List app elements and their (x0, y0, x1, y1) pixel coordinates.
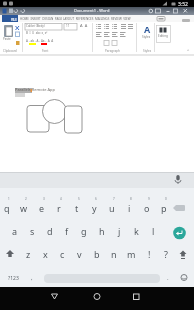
staticText: Paragraph (105, 49, 120, 53)
staticText: Paste (3, 37, 11, 41)
staticText: ! (148, 248, 151, 260)
button[interactable]: h (94, 224, 110, 238)
staticText: Calibri (Body) (26, 24, 45, 28)
staticText: 11 (66, 24, 70, 28)
staticText: k (134, 225, 139, 237)
staticText: z (26, 248, 31, 260)
button[interactable]: v (71, 247, 87, 261)
button[interactable]: a (7, 224, 23, 238)
button[interactable]: t (69, 201, 85, 215)
staticText: Document1 - Word (74, 8, 110, 13)
staticText: ? (164, 248, 168, 260)
button[interactable]: i (121, 201, 137, 215)
staticText: n (111, 248, 117, 260)
button[interactable]: x (37, 247, 53, 261)
staticText: g (81, 225, 87, 237)
staticText: 7 (113, 197, 115, 201)
staticText: a (12, 225, 18, 237)
staticText: y (92, 202, 97, 214)
staticText: Parallels Remote App (15, 87, 55, 92)
staticText: HOME INSERT DESIGN PAGE LAYOUT REFERENCE… (20, 17, 131, 21)
button[interactable]: z (20, 247, 36, 261)
button[interactable]: u (104, 201, 120, 215)
button[interactable]: j (111, 224, 127, 238)
button[interactable]: ?123 (5, 271, 21, 285)
button[interactable]: s (24, 224, 40, 238)
staticText: Editing (158, 34, 168, 38)
staticText: t (75, 202, 79, 214)
button[interactable]: o (139, 201, 155, 215)
staticText: A (144, 23, 151, 35)
staticText: x (43, 248, 48, 260)
staticText: ?123 (8, 275, 19, 282)
staticText: m (127, 248, 136, 260)
staticText: 2 (25, 197, 27, 201)
button[interactable]: ! (141, 247, 157, 261)
staticText: r (57, 202, 61, 214)
staticText: i (128, 202, 131, 214)
staticText: . (167, 274, 169, 282)
button[interactable]: g (76, 224, 92, 238)
staticText: 9 (148, 197, 150, 201)
staticText: b (94, 248, 100, 260)
staticText: A - ab - A - Aa - A A (26, 39, 54, 43)
button[interactable]: f (59, 224, 75, 238)
button[interactable]: . (160, 271, 176, 285)
button[interactable] (129, 287, 194, 310)
staticText: p (161, 202, 167, 214)
staticText: 1 (8, 197, 10, 201)
staticText: s (30, 225, 35, 237)
staticText: , (31, 274, 33, 282)
staticText: 4 (60, 197, 62, 201)
staticText: j (118, 225, 121, 237)
button[interactable]: d (42, 224, 58, 238)
staticText: FILE (11, 18, 17, 22)
staticText: d (47, 225, 53, 237)
button[interactable]: c (54, 247, 70, 261)
staticText: h (99, 225, 105, 237)
staticText: q (4, 202, 10, 214)
button[interactable]: l (145, 224, 161, 238)
button[interactable]: e (34, 201, 50, 215)
button[interactable]: p (156, 201, 172, 215)
button[interactable]: m (123, 247, 139, 261)
staticText: 8 (130, 197, 132, 201)
button[interactable]: b (89, 247, 105, 261)
staticText: l (152, 225, 155, 237)
staticText: 3 (43, 197, 45, 201)
button[interactable]: , (24, 271, 40, 285)
button[interactable]: ? (158, 247, 174, 261)
staticText: 3:52 (178, 1, 188, 8)
button[interactable]: y (86, 201, 102, 215)
staticText: 0 (165, 197, 167, 201)
staticText: f (65, 225, 69, 237)
button[interactable] (0, 287, 64, 310)
staticText: 6 (95, 197, 97, 201)
staticText: w (20, 202, 28, 214)
button[interactable]: k (128, 224, 144, 238)
staticText: Styles (142, 35, 151, 39)
staticText: o (144, 202, 150, 214)
staticText: Font (42, 49, 49, 53)
button[interactable] (64, 287, 129, 310)
button[interactable]: n (106, 247, 122, 261)
staticText: Styles (143, 49, 152, 53)
button[interactable]: FILE (2, 15, 18, 22)
staticText: B I U abc x, x² (26, 31, 48, 35)
button[interactable]: r (51, 201, 67, 215)
staticText: e (39, 202, 45, 214)
staticText: c (60, 248, 65, 260)
staticText: u (109, 202, 115, 214)
staticText: Clipboard (3, 49, 17, 53)
staticText: ^ (187, 48, 190, 53)
staticText: 5 (78, 197, 80, 201)
staticText: v (77, 248, 82, 260)
staticText: A A (80, 23, 88, 28)
button[interactable]: w (16, 201, 32, 215)
button[interactable]: q (0, 201, 15, 215)
